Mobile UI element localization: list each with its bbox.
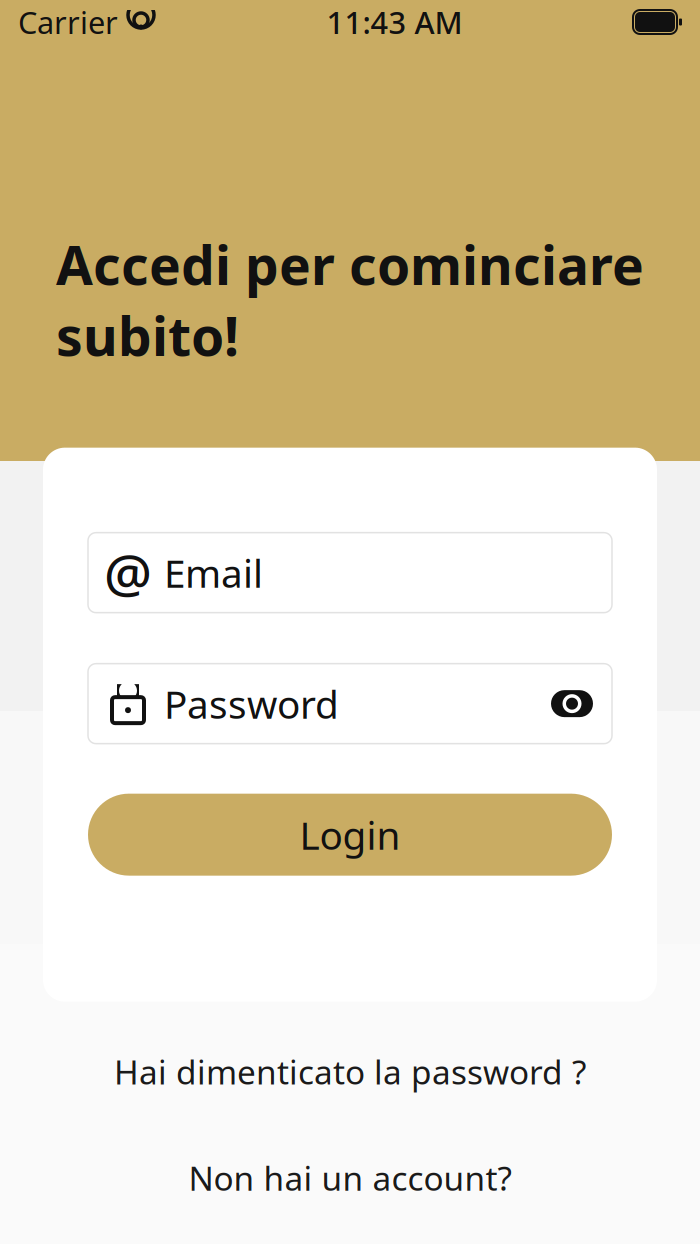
staticText: Carrier (18, 2, 118, 42)
button[interactable]: Login (88, 794, 612, 876)
button[interactable]: @ (88, 533, 612, 613)
staticText: 11:43 AM (326, 2, 462, 42)
staticText: Accedi per cominciare subito! (56, 229, 644, 371)
staticText: Login (299, 809, 400, 860)
button[interactable]: Password (88, 664, 612, 744)
button[interactable]: Non hai un account? (168, 1148, 531, 1208)
staticText: @ (104, 537, 152, 608)
button[interactable]: Hai dimenticato la password ? (94, 1041, 606, 1102)
staticText: Hai dimenticato la password ? (114, 1049, 586, 1094)
staticText: Email (164, 547, 263, 598)
staticText: Non hai un account? (188, 1156, 511, 1200)
staticText: Password (164, 678, 339, 729)
